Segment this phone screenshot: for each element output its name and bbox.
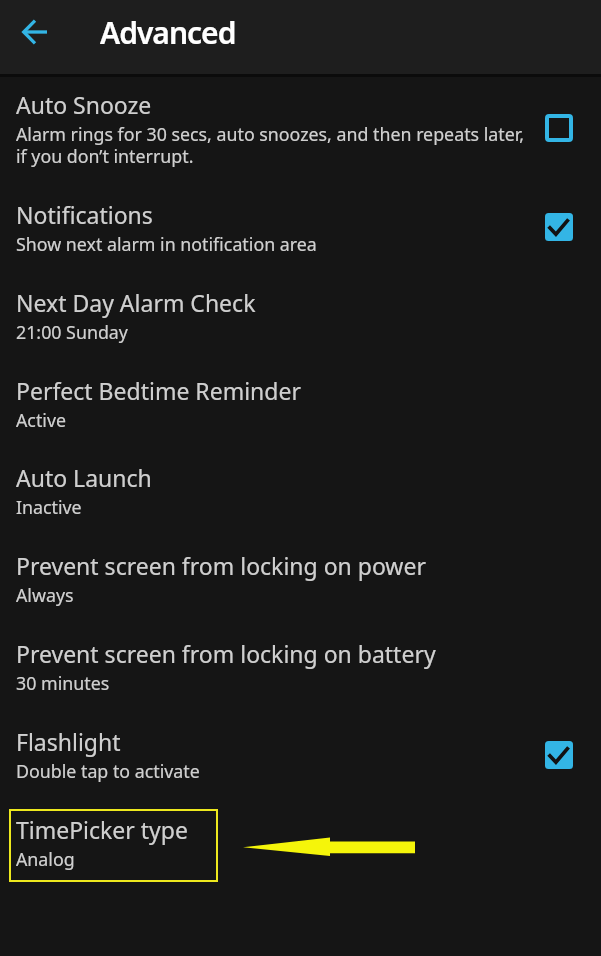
staticText: Always xyxy=(16,585,74,607)
staticText: Prevent screen from locking on battery xyxy=(16,638,436,669)
button[interactable]: Auto Snooze xyxy=(0,74,601,184)
staticText: Alarm rings for 30 secs, auto snoozes, a… xyxy=(16,124,528,168)
staticText: Notifications xyxy=(16,199,153,230)
staticText: Auto Snooze xyxy=(16,89,152,120)
staticText: Prevent screen from locking on power xyxy=(16,550,426,581)
staticText: Active xyxy=(16,410,67,432)
button[interactable]: Prevent screen from locking on power xyxy=(0,535,601,623)
button[interactable]: Next Day Alarm Check xyxy=(0,272,601,360)
button[interactable]: Prevent screen from locking on battery xyxy=(0,623,601,711)
staticText: TimePicker type xyxy=(16,814,188,845)
staticText: Next Day Alarm Check xyxy=(16,287,256,318)
button[interactable]: TimePicker type xyxy=(0,799,601,887)
button[interactable]: Auto Launch xyxy=(0,447,601,535)
button[interactable]: Checked option xyxy=(545,213,573,241)
button[interactable]: Unchecked option xyxy=(545,114,573,142)
staticText: Auto Launch xyxy=(16,462,152,493)
button[interactable]: Perfect Bedtime Reminder xyxy=(0,360,601,448)
button[interactable]: Notifications xyxy=(0,184,601,272)
staticText: Perfect Bedtime Reminder xyxy=(16,375,301,406)
staticText: Analog xyxy=(16,849,75,871)
button[interactable]: Back xyxy=(10,8,58,56)
button[interactable]: Checked option xyxy=(545,741,573,769)
staticText: 30 minutes xyxy=(16,673,110,695)
staticText: 21:00 Sunday xyxy=(16,322,128,344)
staticText: Double tap to activate xyxy=(16,761,200,783)
staticText: Inactive xyxy=(16,497,82,519)
staticText: Show next alarm in notification area xyxy=(16,234,317,256)
staticText: Advanced xyxy=(100,12,236,53)
button[interactable]: Flashlight xyxy=(0,711,601,799)
staticText: Flashlight xyxy=(16,726,121,757)
